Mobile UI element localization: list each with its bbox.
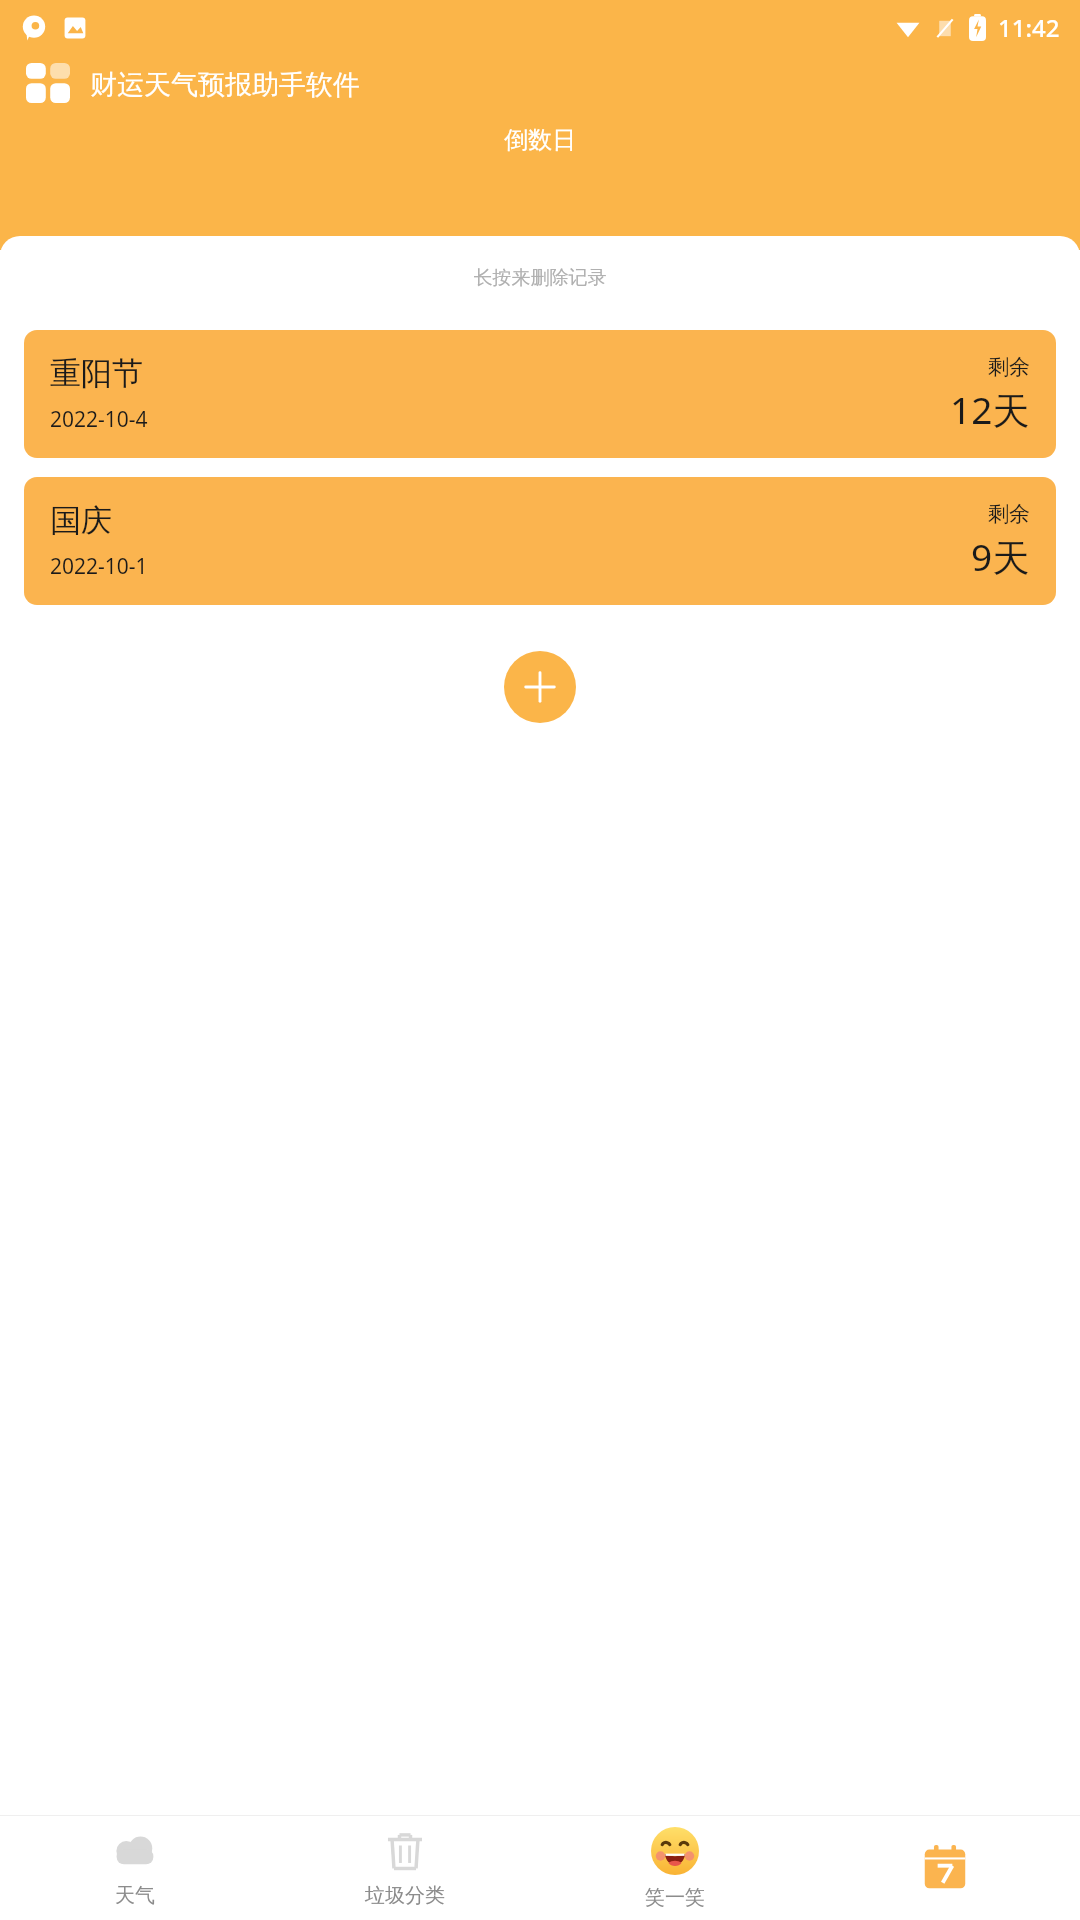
staticText: 重阳节 [50, 354, 143, 393]
staticText: 剩余 [988, 354, 1030, 380]
staticText: 垃圾分类 [365, 1883, 445, 1908]
staticText: 11:42 [998, 11, 1060, 44]
staticText: 财运天气预报助手软件 [90, 68, 360, 102]
staticText: 长按来删除记录 [0, 266, 1080, 290]
button[interactable]: 重阳节 [24, 330, 1056, 458]
staticText: 国庆 [50, 501, 112, 540]
staticText: 9天 [971, 531, 1030, 582]
button[interactable]: 笑一笑 [540, 1816, 810, 1920]
button[interactable]: Add countdown [504, 651, 576, 723]
button[interactable]: Calendar [810, 1816, 1080, 1920]
staticText: 2022-10-1 [50, 552, 148, 581]
staticText: 笑一笑 [645, 1885, 705, 1910]
staticText: 2022-10-4 [50, 405, 148, 434]
button[interactable]: 国庆 [24, 477, 1056, 605]
button[interactable]: 垃圾分类 [270, 1816, 540, 1920]
staticText: 剩余 [988, 501, 1030, 527]
staticText: 12天 [950, 384, 1030, 435]
staticText: 天气 [115, 1883, 155, 1908]
staticText: 倒数日 [504, 125, 576, 155]
button[interactable]: 天气 [0, 1816, 270, 1920]
button[interactable]: Menu [22, 59, 74, 111]
